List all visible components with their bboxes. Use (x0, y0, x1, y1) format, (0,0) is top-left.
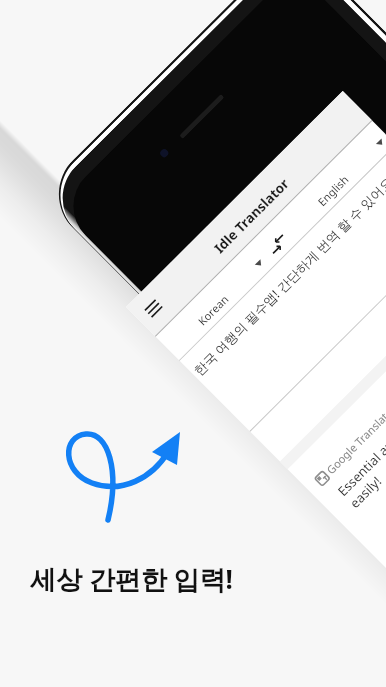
staticText: Idle Translator (210, 174, 293, 257)
button[interactable] (126, 91, 372, 336)
button[interactable]: Menu (137, 292, 170, 325)
staticText: 세상 간편한 입력! (30, 561, 233, 597)
staticText: Korean (195, 292, 231, 328)
button[interactable]: Swap languages (266, 232, 289, 256)
staticText: English (314, 172, 352, 209)
staticText: 한국 여행의 필수앱! 간단하게 번역 할 수 있어요 (189, 172, 386, 379)
button[interactable] (156, 229, 287, 359)
staticText: Google Translator (323, 401, 386, 477)
staticText: Essential app for traveling in Korea! Tr… (334, 292, 386, 512)
button[interactable] (264, 121, 386, 251)
button[interactable]: Google Translator (311, 377, 386, 488)
